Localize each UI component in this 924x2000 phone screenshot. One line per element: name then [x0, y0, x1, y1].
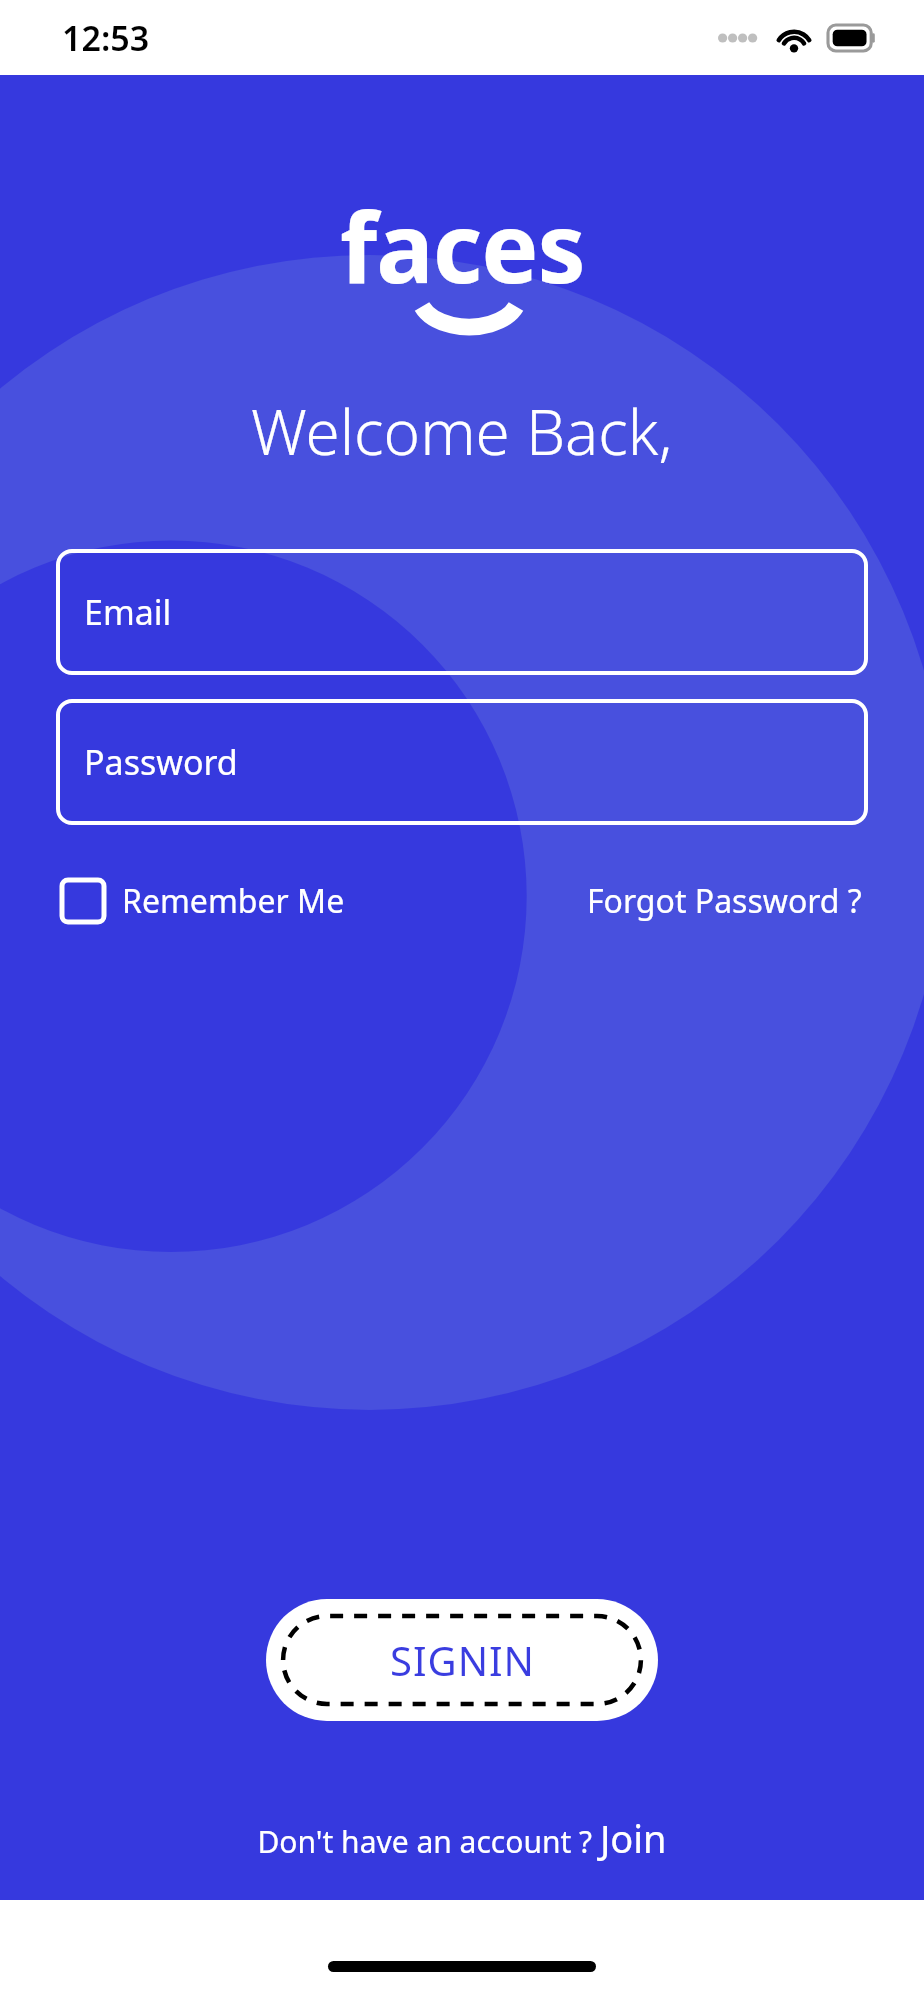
- button[interactable]: Remember Me: [60, 873, 347, 929]
- staticText: faces: [340, 180, 585, 311]
- staticText: Remember Me: [122, 879, 345, 923]
- button[interactable]: Email: [58, 551, 866, 673]
- button[interactable]: SIGNIN: [266, 1599, 658, 1721]
- staticText: Password: [84, 739, 238, 785]
- staticText: Forgot Password ?: [587, 879, 862, 923]
- button[interactable]: Forgot Password ?: [585, 873, 864, 929]
- button[interactable]: Don't have an account ? Join: [247, 1806, 677, 1870]
- button[interactable]: Password: [58, 701, 866, 823]
- staticText: Don't have an account ? Join: [257, 1812, 667, 1864]
- staticText: SIGNIN: [390, 1633, 535, 1687]
- staticText: Welcome Back,: [251, 389, 673, 473]
- staticText: Email: [84, 589, 172, 635]
- staticText: 12:53: [62, 15, 150, 61]
